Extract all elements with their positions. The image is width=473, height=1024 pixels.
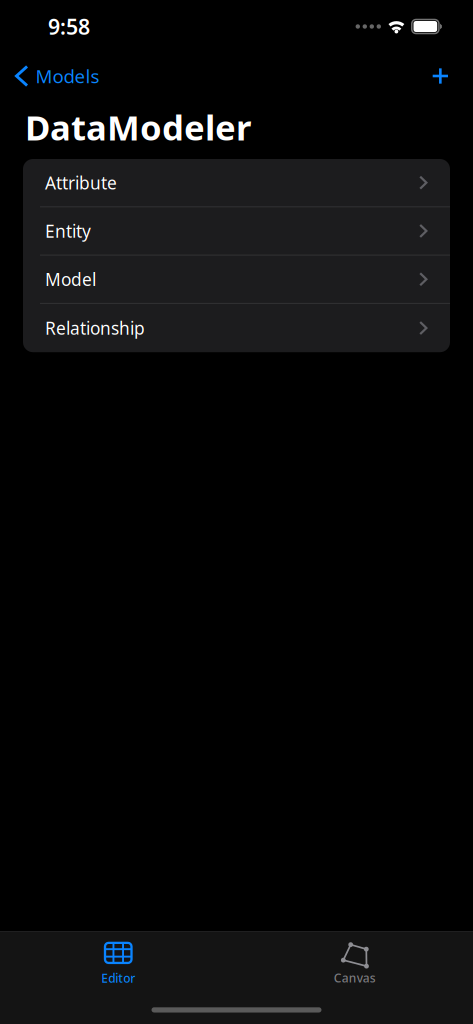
staticText: Editor	[101, 970, 135, 986]
button[interactable]: Attribute	[23, 159, 450, 207]
staticText: Entity	[45, 219, 91, 242]
staticText: Relationship	[45, 316, 145, 339]
button[interactable]: Entity	[23, 207, 450, 256]
button[interactable]: Editor	[0, 932, 236, 994]
staticText: Attribute	[45, 171, 117, 194]
button[interactable]: Models	[0, 58, 109, 94]
staticText: Model	[45, 268, 96, 291]
staticText: Models	[35, 64, 99, 88]
button[interactable]: Add	[415, 60, 473, 92]
staticText: 9:58	[48, 12, 90, 41]
staticText: DataModeler	[25, 104, 251, 150]
staticText: Canvas	[334, 970, 376, 986]
button[interactable]: Relationship	[23, 304, 450, 352]
button[interactable]: Canvas	[236, 932, 473, 994]
button[interactable]: Model	[23, 256, 450, 304]
